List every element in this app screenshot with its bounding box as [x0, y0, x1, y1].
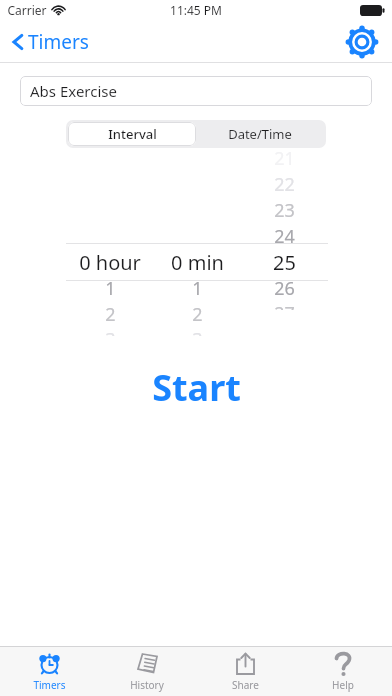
button[interactable]: 0 min	[154, 170, 241, 335]
staticText: 2	[105, 302, 116, 327]
staticText: 0 min	[171, 249, 224, 275]
button[interactable]: Share	[196, 647, 294, 696]
staticText: Interval	[108, 125, 157, 143]
staticText: Abs Exercise	[30, 81, 117, 101]
staticText: Share	[232, 678, 259, 692]
button[interactable]: Abs Exercise	[20, 76, 372, 106]
button[interactable]: 21	[241, 170, 328, 335]
staticText: Start	[152, 363, 241, 407]
button[interactable]: Timers	[8, 25, 93, 59]
staticText: 25	[273, 249, 296, 275]
staticText: 11:45 PM	[170, 2, 222, 18]
staticText: 2	[192, 302, 203, 327]
staticText: 0 hour	[79, 249, 141, 275]
staticText: 1	[105, 276, 116, 301]
button[interactable]: Settings	[346, 26, 378, 58]
staticText: Timers	[33, 678, 66, 692]
staticText: 3	[192, 327, 203, 336]
staticText: 27	[274, 301, 295, 310]
staticText: 23	[274, 198, 295, 223]
button[interactable]: Help	[294, 647, 392, 696]
button[interactable]: 0 hour	[66, 170, 154, 335]
button[interactable]: History	[98, 647, 196, 696]
button[interactable]: Start	[0, 363, 392, 407]
staticText: 21	[274, 146, 295, 171]
staticText: Help	[332, 678, 354, 692]
staticText: Timers	[28, 29, 89, 55]
staticText: Carrier	[7, 2, 47, 18]
staticText: 1	[192, 276, 203, 301]
staticText: Date/Time	[228, 125, 292, 143]
button[interactable]: Timers	[0, 647, 98, 696]
staticText: 3	[105, 327, 116, 336]
button[interactable]: Date/Time	[196, 122, 324, 146]
staticText: 22	[274, 172, 295, 197]
staticText: History	[130, 678, 164, 692]
button[interactable]: Interval	[68, 122, 196, 146]
staticText: 24	[274, 224, 295, 249]
staticText: 26	[274, 276, 295, 301]
